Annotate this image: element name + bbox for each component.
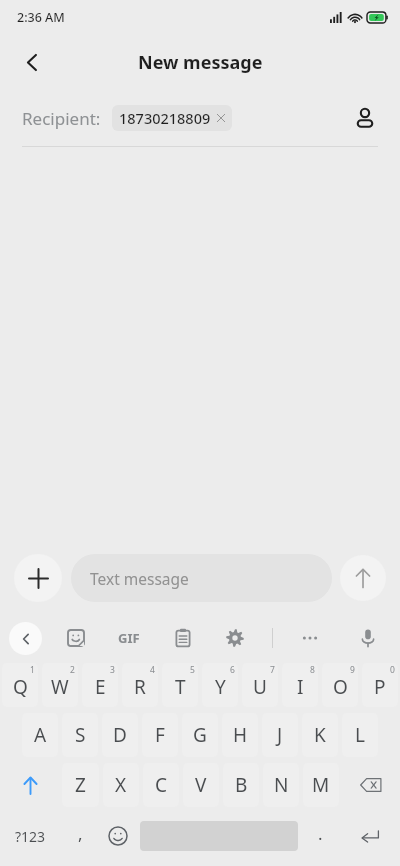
staticText: 9 xyxy=(350,664,355,676)
staticText: 18730218809 xyxy=(119,108,211,128)
button[interactable]: Back xyxy=(10,40,54,84)
staticText: S xyxy=(75,722,86,748)
staticText: 8 xyxy=(310,664,315,676)
staticText: K xyxy=(314,722,326,748)
staticText: C xyxy=(155,772,168,798)
staticText: 1 xyxy=(30,664,35,676)
staticText: 4 xyxy=(150,664,155,676)
staticText: , xyxy=(78,822,83,845)
staticText: T xyxy=(175,674,186,700)
staticText: I xyxy=(297,674,304,700)
staticText: GIF xyxy=(118,629,140,647)
staticText: . xyxy=(318,822,323,845)
staticText: 2 xyxy=(70,664,75,676)
button[interactable]: L xyxy=(342,713,378,757)
staticText: W xyxy=(51,674,69,700)
staticText: M xyxy=(312,772,330,798)
button[interactable]: Expand toolbar xyxy=(9,622,42,655)
button[interactable]: Y xyxy=(202,663,238,707)
staticText: 5 xyxy=(190,664,195,676)
button[interactable]: T xyxy=(162,663,198,707)
button[interactable]: G xyxy=(182,713,218,757)
staticText: G xyxy=(193,722,207,748)
staticText: ?123 xyxy=(15,827,46,846)
button[interactable]: R xyxy=(122,663,158,707)
staticText: P xyxy=(374,674,386,700)
staticText: 3 xyxy=(110,664,115,676)
button[interactable]: Contacts xyxy=(344,97,386,139)
staticText: Text message xyxy=(90,568,189,589)
button[interactable]: Z xyxy=(62,763,99,807)
staticText: Recipient: xyxy=(22,107,101,130)
staticText: New message xyxy=(138,50,263,75)
staticText: N xyxy=(274,772,289,798)
staticText: U xyxy=(253,674,267,700)
button[interactable]: Backspace xyxy=(343,763,398,807)
staticText: O xyxy=(333,674,348,700)
staticText: E xyxy=(95,674,106,700)
button[interactable]: P xyxy=(362,663,398,707)
button[interactable]: Clipboard xyxy=(166,621,200,655)
button[interactable]: N xyxy=(263,763,299,807)
staticText: 7 xyxy=(270,664,275,676)
staticText: F xyxy=(155,722,165,748)
staticText: H xyxy=(233,722,248,748)
button[interactable]: W xyxy=(42,663,78,707)
button[interactable]: H xyxy=(222,713,258,757)
button[interactable]: ?123 xyxy=(2,814,59,858)
staticText: Z xyxy=(75,772,86,798)
staticText: 6 xyxy=(230,664,235,676)
staticText: L xyxy=(355,722,365,748)
button[interactable]: J xyxy=(262,713,298,757)
staticText: Y xyxy=(215,674,226,700)
button[interactable]: V xyxy=(183,763,219,807)
button[interactable]: F xyxy=(142,713,178,757)
button[interactable]: U xyxy=(242,663,278,707)
button[interactable]: Send xyxy=(340,555,386,601)
button[interactable]: Settings xyxy=(218,621,252,655)
button[interactable]: C xyxy=(143,763,179,807)
button[interactable]: O xyxy=(322,663,358,707)
button[interactable]: Q xyxy=(2,663,38,707)
button[interactable]: K xyxy=(302,713,338,757)
button[interactable]: I xyxy=(282,663,318,707)
button[interactable]: D xyxy=(102,713,138,757)
button[interactable]: S xyxy=(62,713,98,757)
button[interactable]: A xyxy=(22,713,58,757)
staticText: 0 xyxy=(390,664,395,676)
staticText: V xyxy=(195,772,207,798)
staticText: B xyxy=(235,772,248,798)
button[interactable]: Shift xyxy=(2,763,58,807)
button[interactable]: . xyxy=(303,814,337,858)
staticText: A xyxy=(34,722,47,748)
button[interactable]: Voice input xyxy=(351,621,385,655)
staticText: X xyxy=(115,772,127,798)
staticText: D xyxy=(113,722,127,748)
button[interactable]: Enter xyxy=(341,814,398,858)
button[interactable]: 18730218809 xyxy=(112,105,232,131)
button[interactable]: Text message xyxy=(71,554,332,602)
button[interactable]: Emoji xyxy=(101,814,135,858)
staticText: J xyxy=(277,722,283,748)
button[interactable]: GIF xyxy=(109,621,149,655)
button[interactable]: , xyxy=(63,814,97,858)
button[interactable]: B xyxy=(223,763,259,807)
button[interactable]: Add attachment xyxy=(14,554,62,602)
button[interactable]: X xyxy=(103,763,139,807)
button[interactable]: More options xyxy=(293,621,327,655)
staticText: Q xyxy=(13,674,28,700)
staticText: R xyxy=(134,674,146,700)
staticText: 2:36 AM xyxy=(17,9,65,26)
button[interactable]: E xyxy=(82,663,118,707)
button[interactable]: Stickers xyxy=(59,621,93,655)
button[interactable]: M xyxy=(303,763,339,807)
